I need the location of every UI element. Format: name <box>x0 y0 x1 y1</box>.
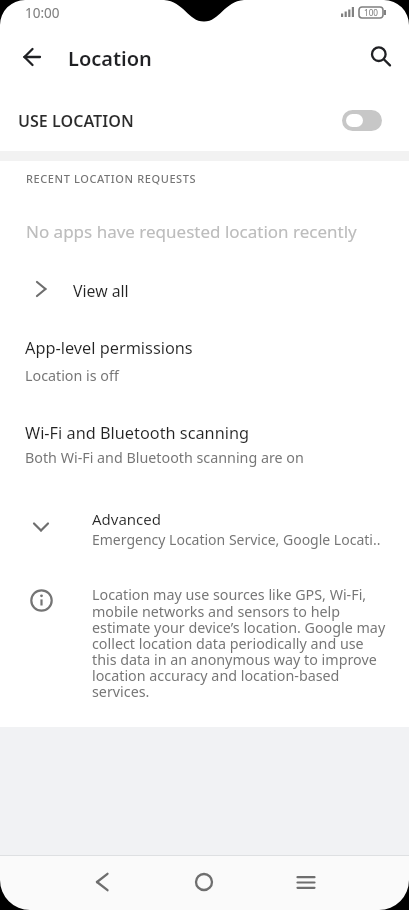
button[interactable]: App-level permissions <box>0 326 409 390</box>
staticText: RECENT LOCATION REQUESTS <box>26 171 197 186</box>
button[interactable] <box>14 39 50 75</box>
button[interactable]: Wi-Fi and Bluetooth scanning <box>0 411 409 475</box>
staticText: 100 <box>364 7 379 18</box>
staticText: Location is off <box>25 366 119 385</box>
staticText: Location <box>68 45 152 72</box>
staticText: Advanced <box>92 509 162 529</box>
button[interactable]: Advanced <box>0 498 409 558</box>
button[interactable] <box>186 864 222 900</box>
staticText: Location may use sources like GPS, Wi-Fi… <box>92 585 386 701</box>
staticText: Wi-Fi and Bluetooth scanning <box>25 422 250 444</box>
button[interactable] <box>84 864 120 900</box>
staticText: 10:00 <box>25 4 60 22</box>
staticText: Emergency Location Service, Google Locat… <box>92 530 381 549</box>
button[interactable]: View all <box>0 267 409 311</box>
staticText: View all <box>73 280 129 302</box>
button[interactable] <box>362 38 398 74</box>
staticText: No apps have requested location recently <box>26 220 357 243</box>
button[interactable] <box>288 864 324 900</box>
staticText: USE LOCATION <box>18 110 134 132</box>
button[interactable]: USE LOCATION <box>0 96 409 145</box>
staticText: Both Wi-Fi and Bluetooth scanning are on <box>25 448 304 467</box>
staticText: App-level permissions <box>25 337 193 359</box>
